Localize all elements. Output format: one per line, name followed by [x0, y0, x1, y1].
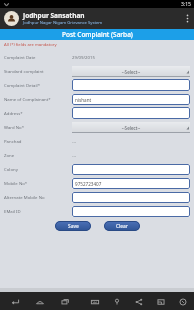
button[interactable]: [72, 164, 190, 175]
staticText: Complaint Detail*: [4, 82, 72, 88]
staticText: Save: [68, 223, 79, 230]
staticText: Mobile No*: [4, 180, 72, 186]
button[interactable]: Recents: [58, 295, 71, 308]
button[interactable]: [72, 206, 190, 217]
button[interactable]: [72, 107, 190, 119]
button[interactable]: Home: [33, 295, 46, 308]
button[interactable]: [72, 79, 190, 91]
staticText: Jodhpur Sansathan: [23, 11, 85, 20]
button[interactable]: More options: [180, 8, 194, 29]
button[interactable]: nishant: [72, 94, 190, 105]
button[interactable]: 9752723407: [72, 178, 190, 189]
button[interactable]: Clear: [104, 221, 140, 231]
staticText: Panchad: [4, 138, 72, 144]
staticText: Complaint Date: [4, 54, 72, 60]
staticText: Colony: [4, 166, 72, 172]
staticText: 3:15: [181, 1, 191, 8]
staticText: nishant: [75, 97, 92, 103]
staticText: Jodhpur Nagar Nigam Grievance System: [23, 20, 103, 26]
button[interactable]: Save: [55, 221, 91, 231]
staticText: Zone: [4, 152, 72, 158]
staticText: Name of Complainant*: [4, 96, 72, 102]
staticText: Address*: [4, 110, 72, 116]
button[interactable]: Screenshot: [154, 295, 167, 308]
staticText: Alternate Mobile No: [4, 194, 72, 200]
button[interactable]: Back: [8, 295, 21, 308]
staticText: Standard complaint: [4, 68, 72, 74]
button[interactable]: Keyboard: [88, 295, 101, 308]
button[interactable]: --Select--: [72, 122, 190, 133]
staticText: 29/09/2015: [72, 54, 190, 60]
staticText: 9752723407: [75, 181, 102, 187]
button[interactable]: [72, 192, 190, 203]
button[interactable]: --Select--: [72, 66, 190, 77]
staticText: --Select--: [75, 125, 187, 131]
button[interactable]: Power: [176, 295, 189, 308]
staticText: --Select--: [75, 69, 187, 75]
button[interactable]: Location: [110, 295, 123, 308]
staticText: EMail ID: [4, 208, 72, 214]
button[interactable]: Share: [132, 295, 145, 308]
staticText: All (*) fields are mandatory: [4, 42, 57, 48]
staticText: Post Complaint (Sarba): [62, 30, 133, 39]
staticText: Ward No*: [4, 124, 72, 130]
staticText: Clear: [116, 223, 128, 230]
